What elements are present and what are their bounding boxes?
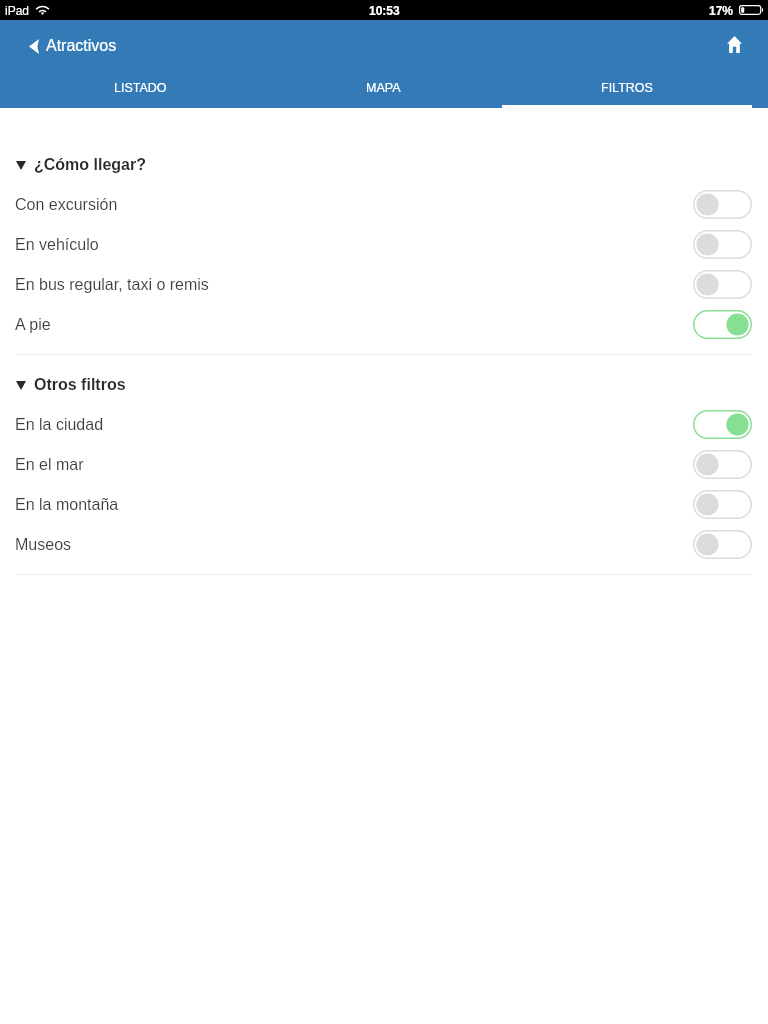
button[interactable]: En bus regular, taxi o remis, off: [693, 270, 752, 299]
button[interactable]: Con excursión, off: [693, 190, 752, 219]
button[interactable]: En bus regular, taxi o remis: [0, 265, 768, 305]
button[interactable]: En vehículo: [0, 225, 768, 265]
staticText: En el mar: [15, 456, 84, 474]
button[interactable]: FILTROS: [502, 68, 752, 108]
button[interactable]: LISTADO: [16, 68, 265, 108]
staticText: En la ciudad: [15, 416, 104, 434]
button[interactable]: En el mar, off: [693, 450, 752, 479]
staticText: Con excursión: [15, 196, 118, 214]
staticText: LISTADO: [114, 81, 167, 95]
button[interactable]: Museos: [0, 525, 768, 565]
button[interactable]: En la montaña, off: [693, 490, 752, 519]
button[interactable]: En vehículo, off: [693, 230, 752, 259]
staticText: En vehículo: [15, 236, 99, 254]
button[interactable]: A pie: [0, 305, 768, 345]
staticText: A pie: [15, 316, 51, 334]
button[interactable]: En la montaña: [0, 485, 768, 525]
button[interactable]: Home: [713, 24, 768, 65]
staticText: MAPA: [366, 81, 401, 95]
staticText: En bus regular, taxi o remis: [15, 276, 209, 294]
button[interactable]: Atractivos: [0, 31, 129, 61]
staticText: 17%: [709, 4, 734, 17]
button[interactable]: En el mar: [0, 445, 768, 485]
staticText: 10:53: [369, 4, 400, 17]
button[interactable]: Con excursión: [0, 185, 768, 225]
staticText: Otros filtros: [34, 376, 126, 394]
staticText: iPad: [5, 4, 30, 17]
staticText: ¿Cómo llegar?: [34, 156, 147, 174]
button[interactable]: A pie, on: [693, 310, 752, 339]
staticText: FILTROS: [601, 81, 653, 95]
button[interactable]: En la ciudad, on: [693, 410, 752, 439]
button[interactable]: En la ciudad: [0, 405, 768, 445]
button[interactable]: MAPA: [265, 68, 502, 108]
button[interactable]: Museos, off: [693, 530, 752, 559]
staticText: Museos: [15, 536, 72, 554]
staticText: Atractivos: [46, 37, 117, 55]
staticText: En la montaña: [15, 496, 119, 514]
